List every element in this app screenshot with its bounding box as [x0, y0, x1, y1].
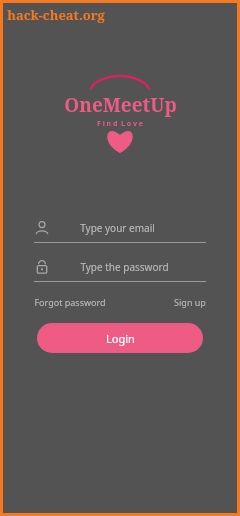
staticText: hack-cheat.org — [7, 6, 105, 24]
button[interactable]: Password — [34, 259, 206, 282]
button[interactable]: Login — [37, 323, 203, 353]
button[interactable]: Forgot password — [34, 293, 106, 311]
staticText: Forgot password — [34, 296, 106, 308]
staticText: Sign up — [174, 296, 206, 308]
staticText: Type the password — [80, 260, 169, 274]
other: Email — [34, 220, 50, 236]
staticText: Type your email — [80, 221, 155, 235]
button[interactable]: Email — [34, 220, 206, 243]
staticText: Login — [106, 331, 135, 346]
staticText: F i n d L o v e — [97, 119, 143, 129]
other: Password — [34, 259, 50, 275]
staticText: OneMeetUp — [64, 92, 177, 118]
button[interactable]: Sign up — [174, 293, 206, 311]
